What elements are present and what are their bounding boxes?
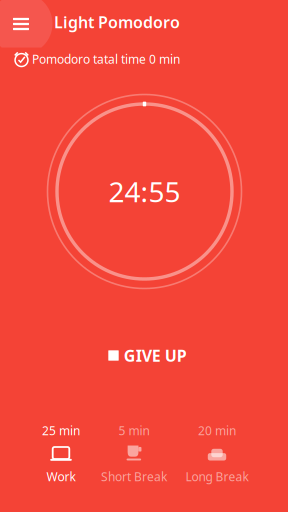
staticText: 25 min: [42, 422, 80, 438]
button[interactable]: 25 min: [11, 424, 111, 483]
staticText: 24:55: [108, 173, 180, 210]
staticText: 20 min: [198, 422, 236, 438]
button[interactable]: Menu: [0, 0, 42, 48]
staticText: Light Pomodoro: [54, 11, 180, 33]
staticText: Work: [46, 468, 75, 484]
staticText: Short Break: [101, 468, 167, 484]
staticText: GIVE UP: [124, 345, 187, 366]
button[interactable]: 20 min: [167, 424, 267, 483]
staticText: 5 min: [118, 422, 149, 438]
button[interactable]: GIVE UP: [88, 335, 207, 376]
staticText: Pomodoro tatal time 0 min: [32, 51, 180, 67]
staticText: Long Break: [185, 468, 248, 484]
button[interactable]: 5 min: [84, 424, 184, 483]
